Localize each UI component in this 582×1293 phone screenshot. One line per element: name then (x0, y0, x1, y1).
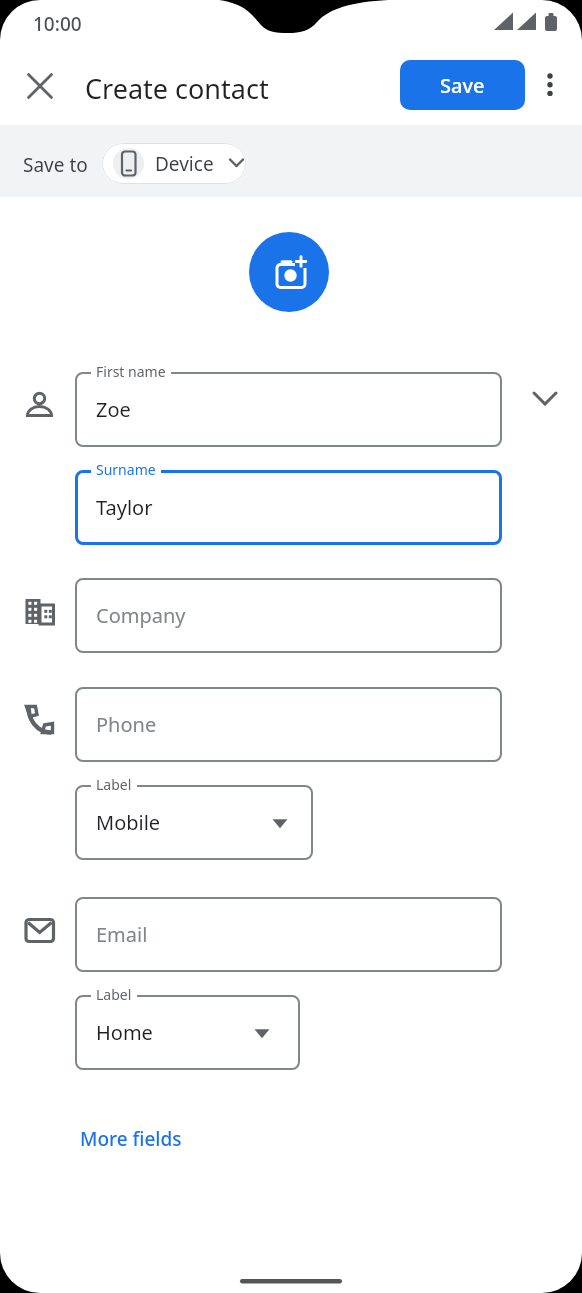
staticText: Create contact (85, 70, 269, 107)
staticText: Mobile (96, 809, 161, 836)
staticText: Save to (23, 152, 88, 178)
staticText: Home (96, 1019, 153, 1046)
staticText: Label (96, 985, 132, 1004)
staticText: First name (96, 362, 166, 381)
staticText: Label (96, 775, 132, 794)
button[interactable]: Mobile (75, 785, 313, 860)
staticText: Email (96, 921, 148, 948)
staticText: Company (96, 602, 186, 629)
staticText: Phone (96, 711, 157, 738)
staticText: Surname (96, 460, 156, 479)
staticText: 10:00 (33, 11, 82, 37)
button[interactable]: Phone (75, 687, 502, 762)
button[interactable] (249, 232, 329, 312)
button[interactable]: Home (75, 995, 300, 1070)
button[interactable]: Save (400, 60, 525, 110)
button[interactable]: Zoe (75, 372, 502, 447)
button[interactable]: Company (75, 578, 502, 653)
staticText: Device (155, 151, 214, 177)
button[interactable]: Email (75, 897, 502, 972)
button[interactable]: More fields (80, 1126, 182, 1152)
button[interactable]: Taylor (75, 470, 502, 545)
staticText: Zoe (96, 396, 131, 423)
button[interactable]: Device (102, 143, 246, 184)
staticText: Taylor (96, 494, 153, 521)
staticText: Save (440, 72, 485, 99)
